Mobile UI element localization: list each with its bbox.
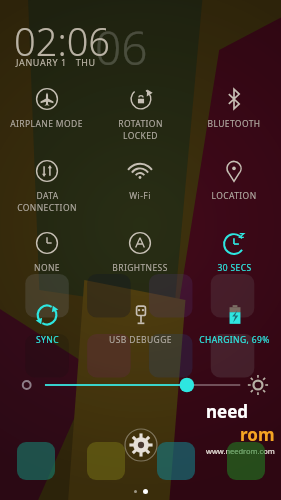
staticText: 06: [95, 16, 148, 79]
button[interactable]: 30 SECS: [187, 222, 281, 294]
button[interactable]: USB DEBUGGE: [93, 294, 187, 366]
staticText: CHARGING, 69%: [199, 334, 270, 346]
staticText: Wi-Fi: [129, 190, 151, 202]
staticText: BLUETOOTH: [207, 118, 261, 130]
staticText: LOCKED: [123, 130, 158, 142]
staticText: SYNC: [36, 334, 59, 346]
staticText: CONNECTION: [17, 202, 77, 214]
button[interactable]: BRIGHTNESS: [93, 222, 187, 294]
button[interactable]: Phone: [0, 440, 71, 498]
staticText: rom: [240, 423, 275, 446]
button[interactable]: Apps: [211, 440, 281, 498]
button[interactable]: BLUETOOTH: [187, 78, 281, 150]
button[interactable]: NONE: [0, 222, 93, 294]
staticText: LOCATION: [211, 190, 257, 202]
staticText: 02:06: [14, 15, 111, 67]
button[interactable]: Contacts: [71, 440, 141, 498]
staticText: DATA: [36, 190, 59, 202]
button[interactable]: Wi-Fi: [93, 150, 187, 222]
staticText: www.needrom.com: [206, 446, 275, 456]
button[interactable]: SYNC: [0, 294, 93, 366]
button[interactable]: CHARGING, 69%: [187, 294, 281, 366]
staticText: need: [206, 400, 249, 423]
button[interactable]: ROTATION: [93, 78, 187, 150]
button[interactable]: DATA: [0, 150, 93, 222]
button[interactable]: LOCATION: [187, 150, 281, 222]
button[interactable]: [0, 370, 281, 400]
staticText: ROTATION: [118, 118, 163, 130]
staticText: BRIGHTNESS: [112, 262, 168, 274]
staticText: USB DEBUGGE: [109, 334, 172, 346]
staticText: 30 SECS: [217, 262, 252, 274]
staticText: JANUARY 1 THU: [16, 56, 96, 68]
staticText: AIRPLANE MODE: [10, 118, 83, 130]
staticText: NONE: [34, 262, 60, 274]
button[interactable]: Settings: [124, 428, 158, 462]
button[interactable]: AIRPLANE MODE: [0, 78, 93, 150]
button[interactable]: Camera: [141, 440, 211, 498]
